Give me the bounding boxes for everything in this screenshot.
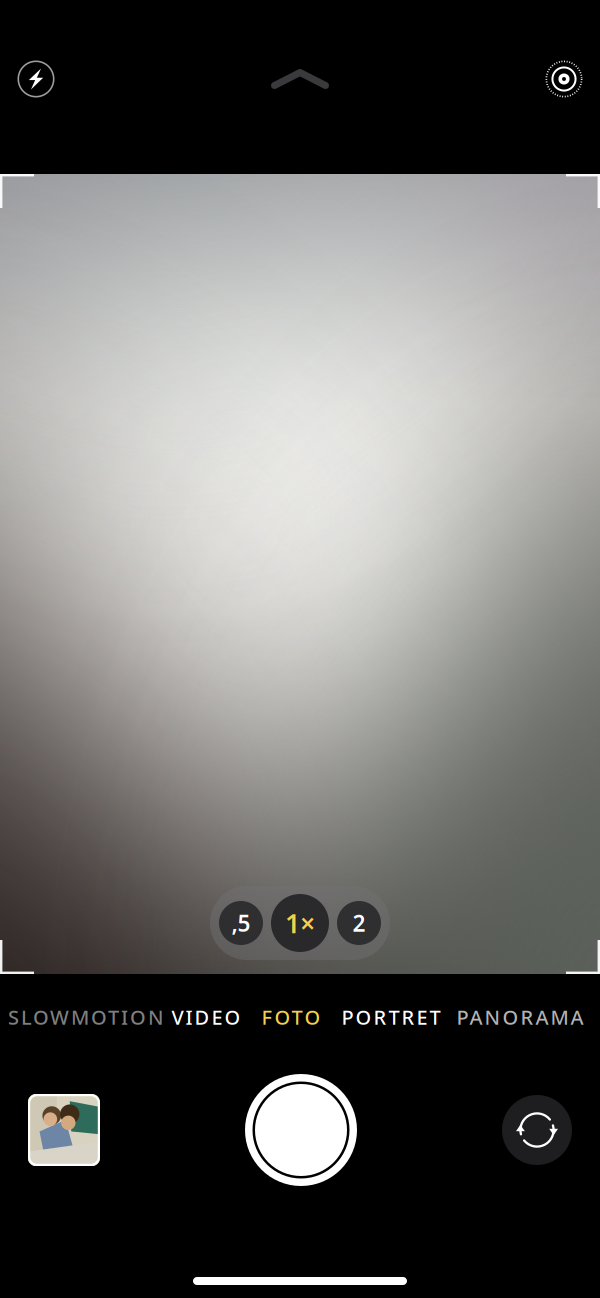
button[interactable]: More camera controls: [250, 51, 350, 107]
staticText: 2: [352, 908, 365, 938]
button[interactable]: Live Photo: [536, 51, 592, 107]
button[interactable]: SLOWMOTION: [22, 1004, 150, 1030]
button[interactable]: FOTO: [262, 1004, 320, 1030]
staticText: PANORAMA: [456, 1004, 583, 1030]
staticText: PORTRET: [341, 1004, 440, 1030]
button[interactable]: 1×: [271, 894, 329, 952]
button[interactable]: ,5: [219, 901, 263, 945]
button[interactable]: Photo library: [28, 1094, 100, 1166]
button[interactable]: Switch camera: [502, 1095, 572, 1165]
staticText: ,5: [231, 908, 250, 938]
staticText: FOTO: [261, 1004, 320, 1030]
staticText: 1×: [285, 905, 315, 941]
button[interactable]: Flash: [8, 51, 64, 107]
button[interactable]: PANORAMA: [462, 1004, 578, 1030]
staticText: VIDEO: [171, 1004, 240, 1030]
staticText: SLOWMOTION: [8, 1004, 164, 1030]
button[interactable]: Take photo: [245, 1074, 357, 1186]
button[interactable]: 2: [337, 901, 381, 945]
button[interactable]: PORTRET: [341, 1004, 441, 1030]
button[interactable]: VIDEO: [171, 1004, 241, 1030]
